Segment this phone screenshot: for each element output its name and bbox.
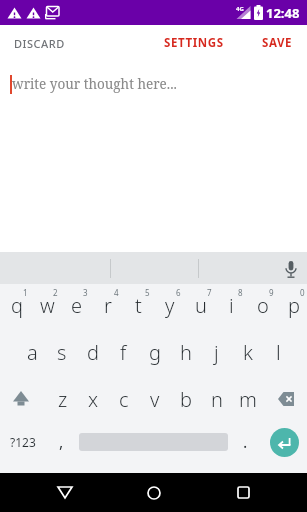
staticText: 6 [176, 287, 181, 298]
staticText: 2 [53, 287, 58, 298]
button[interactable]: 2 [30, 284, 60, 331]
button[interactable]: n [199, 378, 230, 425]
button[interactable]: f [106, 331, 137, 378]
staticText: SETTINGS [164, 35, 224, 51]
button[interactable] [280, 257, 302, 279]
button[interactable]: m [230, 378, 261, 425]
staticText: 4G [236, 5, 244, 13]
staticText: c [119, 386, 129, 413]
button[interactable]: 8 [214, 284, 245, 331]
button[interactable]: j [199, 331, 230, 378]
staticText: y [165, 292, 175, 319]
button[interactable]: 5 [121, 284, 152, 331]
button[interactable] [134, 473, 174, 512]
button[interactable]: SAVE [262, 35, 293, 51]
button[interactable] [261, 425, 307, 459]
button[interactable]: c [106, 378, 137, 425]
staticText: 8 [238, 287, 243, 298]
staticText: e [71, 292, 83, 319]
button[interactable] [261, 378, 307, 425]
staticText: 7 [207, 287, 212, 298]
staticText: v [150, 386, 160, 413]
button[interactable]: , [46, 425, 77, 459]
staticText: DISCARD [14, 36, 65, 51]
staticText: ?123 [10, 434, 36, 450]
button[interactable] [0, 378, 46, 425]
button[interactable]: ?123 [0, 425, 46, 459]
staticText: 12:48 [266, 4, 300, 22]
staticText: k [243, 339, 253, 366]
button[interactable]: 4 [90, 284, 121, 331]
staticText: z [58, 386, 68, 413]
staticText: w [40, 292, 55, 319]
button[interactable]: s [45, 331, 75, 378]
button[interactable]: h [168, 331, 199, 378]
staticText: n [211, 386, 223, 413]
staticText: o [257, 292, 269, 319]
button[interactable]: v [137, 378, 168, 425]
button[interactable]: z [46, 378, 76, 425]
staticText: s [57, 339, 67, 366]
staticText: b [180, 386, 192, 413]
button[interactable]: a [15, 331, 45, 378]
button[interactable]: d [75, 331, 106, 378]
button[interactable]: l [261, 331, 292, 378]
staticText: u [195, 292, 207, 319]
button[interactable]: g [137, 331, 168, 378]
button[interactable] [45, 473, 85, 512]
staticText: j [214, 339, 219, 366]
staticText: d [87, 339, 99, 366]
staticText: r [104, 292, 112, 319]
staticText: m [239, 386, 257, 413]
staticText: i [229, 292, 234, 319]
button[interactable] [79, 425, 228, 459]
staticText: . [243, 431, 248, 453]
button[interactable]: 6 [152, 284, 183, 331]
button[interactable]: 0 [276, 284, 307, 331]
button[interactable] [223, 473, 263, 512]
button[interactable]: 9 [245, 284, 276, 331]
staticText: , [59, 431, 64, 453]
staticText: 5 [145, 287, 150, 298]
staticText: p [288, 292, 300, 319]
staticText: x [88, 386, 99, 413]
staticText: f [120, 339, 127, 366]
button[interactable]: x [76, 378, 106, 425]
staticText: q [11, 292, 23, 319]
button[interactable]: 3 [60, 284, 90, 331]
button[interactable]: k [230, 331, 261, 378]
button[interactable]: 1 [0, 284, 30, 331]
staticText: t [135, 292, 142, 319]
staticText: 1 [23, 287, 28, 298]
button[interactable]: DISCARD [14, 36, 65, 51]
button[interactable]: 7 [183, 284, 214, 331]
staticText: a [27, 339, 38, 366]
staticText: 3 [83, 287, 88, 298]
button[interactable]: b [168, 378, 199, 425]
staticText: SAVE [262, 35, 293, 51]
staticText: 4 [114, 287, 119, 298]
staticText: 0 [300, 287, 305, 298]
button[interactable]: write your thought here... [0, 57, 307, 252]
staticText: h [180, 339, 192, 366]
button[interactable]: SETTINGS [164, 35, 224, 51]
staticText: write your thought here... [12, 75, 177, 93]
button[interactable]: . [230, 425, 261, 459]
staticText: 9 [269, 287, 274, 298]
staticText: l [276, 339, 281, 366]
staticText: g [149, 339, 161, 366]
